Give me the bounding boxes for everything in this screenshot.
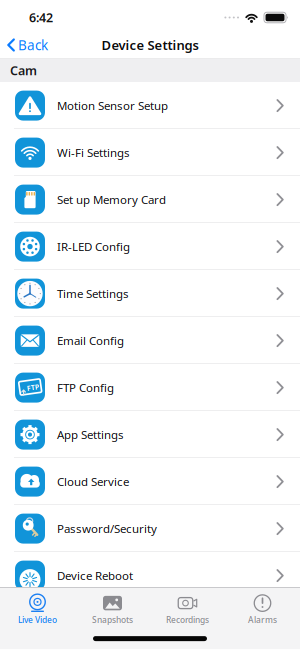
staticText: Snapshots <box>92 614 133 625</box>
button[interactable]: Password/Security <box>0 505 300 552</box>
staticText: Recordings <box>166 614 209 625</box>
button[interactable]: Set up Memory Card <box>0 176 300 223</box>
staticText: Email Config <box>57 333 124 348</box>
staticText: Device Reboot <box>57 568 133 583</box>
staticText: Wi-Fi Settings <box>57 145 130 160</box>
staticText: App Settings <box>57 427 124 442</box>
staticText: Cam <box>10 62 37 79</box>
button[interactable]: App Settings <box>0 411 300 458</box>
staticText: Password/Security <box>57 521 157 536</box>
staticText: Motion Sensor Setup <box>57 98 168 113</box>
staticText: Time Settings <box>57 286 129 301</box>
button[interactable]: Alarms <box>225 593 300 625</box>
staticText: Alarms <box>248 614 277 625</box>
button[interactable]: Live Video <box>0 593 75 625</box>
button[interactable]: FTP <box>0 364 300 411</box>
staticText: Live Video <box>18 614 57 625</box>
staticText: Set up Memory Card <box>57 192 166 207</box>
button[interactable]: IR-LED Config <box>0 223 300 270</box>
button[interactable]: Cloud Service <box>0 458 300 505</box>
staticText: IR-LED Config <box>57 239 130 254</box>
button[interactable]: Motion Sensor Setup <box>0 82 300 129</box>
button[interactable]: Email Config <box>0 317 300 364</box>
button[interactable]: Recordings <box>150 593 225 625</box>
button[interactable]: Device Reboot <box>0 552 300 599</box>
staticText: Cloud Service <box>57 474 129 489</box>
staticText: FTP <box>27 383 39 392</box>
staticText: Device Settings <box>101 36 198 54</box>
button[interactable]: Wi-Fi Settings <box>0 129 300 176</box>
staticText: 6:42 <box>29 9 53 26</box>
button[interactable]: Back <box>0 36 48 54</box>
staticText: Back <box>18 36 48 54</box>
button[interactable]: Time Settings <box>0 270 300 317</box>
staticText: FTP Config <box>57 380 114 395</box>
button[interactable]: Snapshots <box>75 593 150 625</box>
